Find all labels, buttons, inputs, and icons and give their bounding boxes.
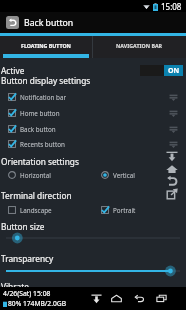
staticText: ON — [168, 66, 180, 76]
staticText: Landscape — [20, 206, 52, 215]
button[interactable]: FLOATING BUTTON — [0, 36, 92, 58]
button[interactable]: Portrait — [93, 203, 186, 217]
staticText: Vertical — [113, 171, 135, 180]
button[interactable]: Home — [165, 162, 179, 176]
button[interactable]: Back — [133, 292, 146, 305]
button[interactable]: Landscape — [0, 203, 93, 217]
staticText: Back button — [20, 125, 56, 134]
button[interactable]: NAVIGATION BAR — [93, 36, 186, 58]
button[interactable]: App icon, navigate up — [6, 16, 19, 29]
button[interactable] — [0, 265, 186, 277]
button[interactable]: Back — [165, 174, 179, 188]
button[interactable]: Back button — [0, 122, 186, 136]
staticText: Recents button — [20, 140, 65, 149]
button[interactable]: ON — [140, 65, 183, 76]
button[interactable]: Pull down status bar — [165, 149, 179, 163]
button[interactable]: Recents — [155, 292, 168, 305]
staticText: Orientation settings — [1, 156, 79, 167]
button[interactable] — [0, 232, 186, 244]
staticText: Back button — [24, 17, 74, 29]
staticText: Notification bar — [20, 93, 67, 102]
button[interactable]: Home — [110, 292, 123, 305]
button[interactable]: Horizontal — [0, 168, 93, 182]
button[interactable]: Vertical — [93, 168, 186, 182]
button[interactable]: Home button — [0, 106, 186, 120]
staticText: Horizontal — [20, 171, 51, 180]
staticText: 80% 174MB/2.0GB — [8, 299, 66, 308]
staticText: 15:08 — [161, 1, 182, 12]
staticText: Active — [1, 65, 25, 76]
staticText: 4/26(Sat) 15:08 — [3, 289, 51, 298]
button[interactable]: Notification bar — [0, 90, 186, 104]
staticText: Transparency — [1, 253, 54, 264]
staticText: Terminal direction — [1, 190, 72, 201]
button[interactable]: Recents — [165, 187, 179, 201]
button[interactable]: Active — [0, 62, 186, 78]
staticText: Home button — [20, 109, 60, 118]
staticText: FLOATING BUTTON — [21, 42, 71, 49]
staticText: NAVIGATION BAR — [116, 42, 163, 49]
staticText: Button display settings — [1, 75, 91, 86]
button[interactable]: Recents button — [0, 137, 186, 151]
staticText: Portrait — [113, 206, 136, 215]
button[interactable]: Pull down notifications — [90, 292, 103, 305]
staticText: Vibrate — [1, 281, 29, 292]
staticText: Button size — [1, 221, 45, 232]
